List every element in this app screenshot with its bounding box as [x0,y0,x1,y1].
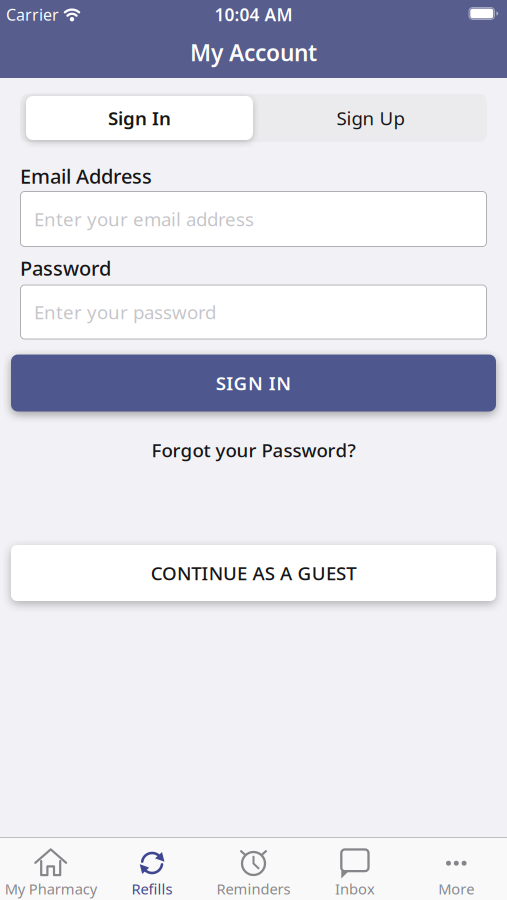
button[interactable]: More [406,837,507,900]
button[interactable]: Sign In [26,96,253,140]
button[interactable]: SIGN IN [11,354,496,411]
staticText: Reminders [216,879,290,899]
staticText: SIGN IN [216,371,291,395]
staticText: More [438,879,474,899]
staticText: My Pharmacy [5,879,97,899]
staticText: Password [20,255,111,281]
staticText: Sign In [108,106,171,130]
staticText: Email Address [20,163,152,189]
staticText: Enter your password [34,300,216,324]
staticText: Inbox [335,879,375,899]
button[interactable]: My Pharmacy [0,837,101,900]
button[interactable]: Reminders [203,837,304,900]
staticText: Enter your email address [34,207,254,231]
staticText: Carrier [6,4,59,25]
staticText: Forgot your Password? [151,438,355,462]
staticText: 10:04 AM [214,3,292,26]
button[interactable]: CONTINUE AS A GUEST [11,545,496,601]
button[interactable]: Refills [101,837,203,900]
staticText: Sign Up [336,106,404,130]
staticText: My Account [190,37,317,67]
button[interactable]: Inbox [304,837,406,900]
button[interactable]: Forgot your Password? [151,438,355,462]
staticText: CONTINUE AS A GUEST [151,561,356,585]
button[interactable]: Sign Up [257,96,484,140]
staticText: Refills [132,879,173,899]
